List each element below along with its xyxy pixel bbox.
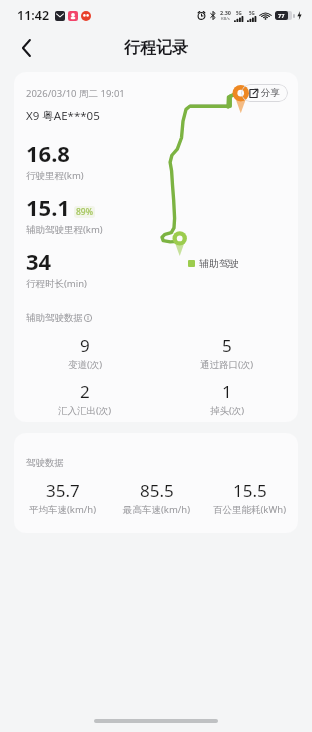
button[interactable]: 9 — [14, 334, 156, 371]
staticText: 辅助驾驶 — [199, 257, 239, 270]
staticText: KB/s — [221, 16, 230, 22]
staticText: 行程记录 — [124, 38, 188, 58]
staticText: 行驶里程(km) — [26, 169, 84, 182]
staticText: 85.5 — [140, 479, 174, 502]
staticText: 行程时长(min) — [26, 277, 87, 290]
staticText: 通过路口(次) — [200, 358, 254, 371]
staticText: 5G — [236, 10, 242, 16]
staticText: 11:42 — [17, 7, 50, 24]
staticText: 89% — [76, 206, 93, 218]
staticText: 2026/03/10 周二 19:01 — [26, 87, 125, 100]
staticText: 16.8 — [26, 138, 70, 168]
staticText: 77 — [278, 12, 285, 19]
staticText: 1 — [222, 380, 232, 403]
staticText: 平均车速(km/h) — [29, 503, 97, 516]
staticText: 辅助驾驶数据 — [26, 312, 83, 324]
button[interactable]: 35.7 — [16, 479, 110, 516]
staticText: 15.1 — [26, 192, 70, 222]
staticText: 5 — [222, 334, 232, 357]
staticText: 5G — [249, 10, 255, 16]
staticText: 分享 — [261, 87, 280, 99]
button[interactable]: 15.5 — [203, 479, 296, 516]
button[interactable]: 85.5 — [110, 479, 203, 516]
staticText: X9 粤AE***05 — [26, 108, 100, 124]
staticText: 2.30 — [220, 9, 231, 16]
staticText: 15.5 — [233, 479, 267, 502]
button[interactable]: 分享 — [241, 84, 288, 102]
button[interactable]: Back — [8, 30, 44, 66]
button[interactable]: 1 — [156, 380, 298, 417]
staticText: 35.7 — [46, 479, 80, 502]
staticText: 驾驶数据 — [26, 457, 64, 469]
staticText: 34 — [26, 246, 52, 276]
staticText: 汇入汇出(次) — [58, 404, 112, 417]
staticText: 百公里能耗(kWh) — [213, 503, 286, 516]
staticText: 变道(次) — [68, 358, 103, 371]
staticText: 掉头(次) — [210, 404, 245, 417]
button[interactable]: 5 — [156, 334, 298, 371]
staticText: 辅助驾驶里程(km) — [26, 223, 103, 236]
button[interactable]: 2 — [14, 380, 156, 417]
staticText: 9 — [80, 334, 90, 357]
staticText: 2 — [80, 380, 90, 403]
staticText: 最高车速(km/h) — [123, 503, 191, 516]
